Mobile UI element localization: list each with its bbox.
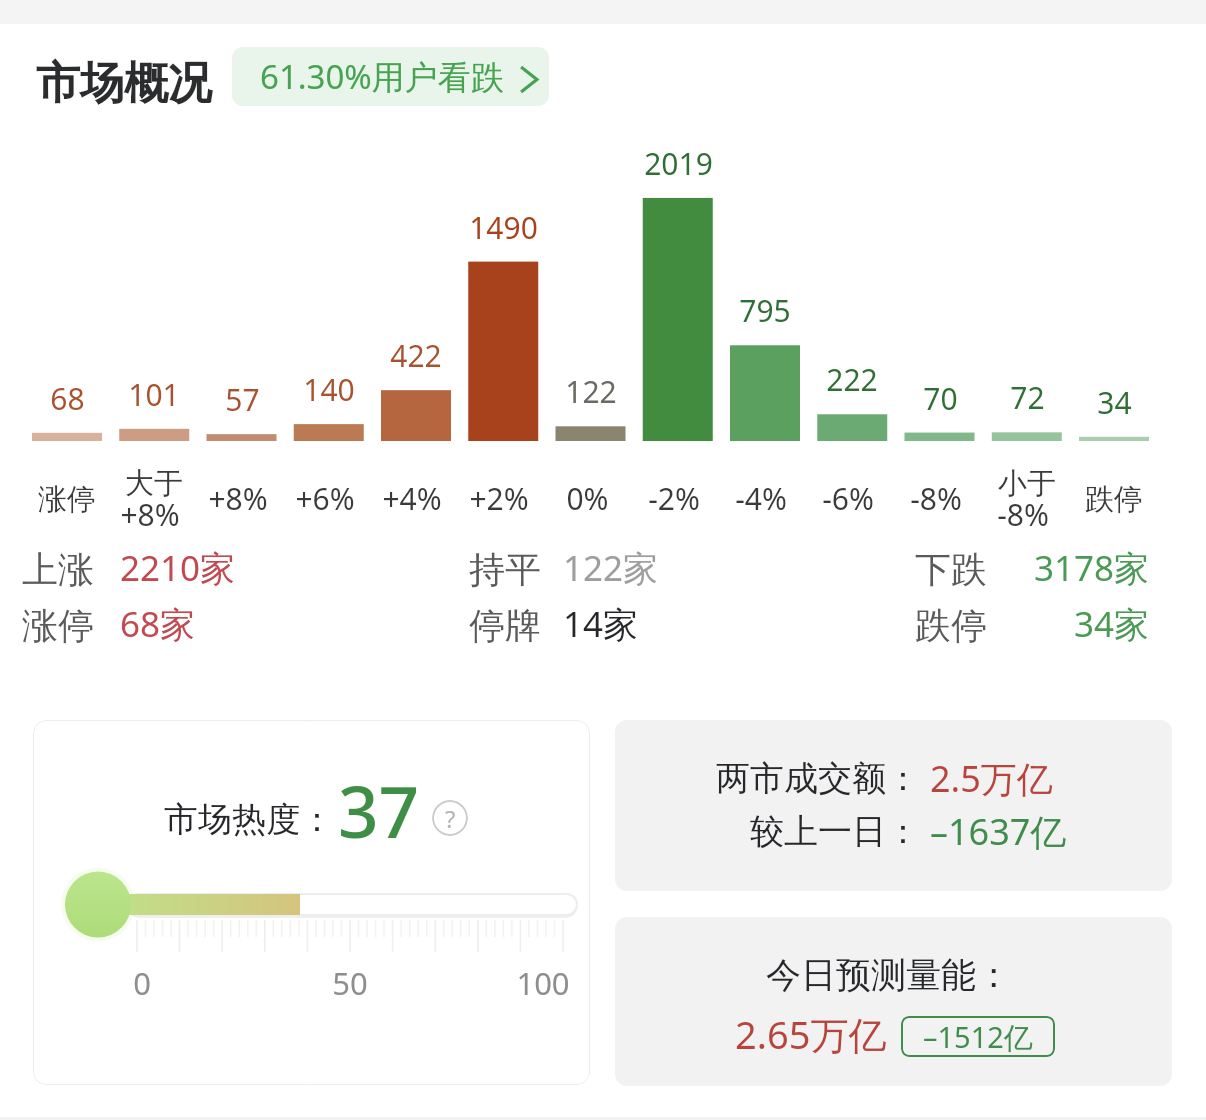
button[interactable]: 涨停 68	[32, 140, 102, 530]
staticText: 222	[826, 359, 878, 400]
staticText: -6%	[822, 478, 874, 519]
staticText: 0	[133, 962, 151, 1004]
staticText: 72	[1010, 377, 1045, 418]
staticText: 140	[303, 369, 355, 410]
staticText: 市场概况	[36, 56, 212, 111]
other: More	[520, 67, 538, 92]
button[interactable]: -4% 795	[730, 140, 800, 530]
staticText: 795	[739, 290, 791, 331]
staticText: 37	[338, 762, 420, 859]
button[interactable]: 61.30%用户看跌	[232, 47, 549, 106]
staticText: 14家	[563, 600, 639, 648]
staticText: 100	[516, 962, 570, 1004]
staticText: +4%	[382, 478, 442, 519]
staticText: +8%	[120, 494, 180, 535]
staticText: 涨停	[38, 481, 96, 518]
button[interactable]: 市场热度：	[33, 720, 590, 1085]
staticText: 57	[225, 379, 260, 420]
staticText: 422	[390, 335, 442, 376]
button[interactable]: 小于-8% 72	[992, 140, 1062, 530]
staticText: 122家	[563, 544, 659, 592]
button[interactable]: +4% 422	[381, 140, 451, 530]
button[interactable]: 0% 122	[556, 140, 626, 530]
staticText: –1637亿	[930, 807, 1067, 856]
button[interactable]: 两市成交额：	[615, 720, 1172, 891]
staticText: 两市成交额：	[716, 757, 920, 800]
button[interactable]: 大于+8% 101	[119, 140, 189, 530]
staticText: 小于	[998, 465, 1056, 502]
staticText: 上涨	[22, 547, 94, 592]
staticText: 较上一日：	[750, 810, 920, 853]
button[interactable]: +2% 1490	[468, 140, 538, 530]
staticText: -8%	[910, 478, 962, 519]
button[interactable]: 今日预测量能：	[615, 917, 1172, 1086]
staticText: 68家	[120, 600, 196, 648]
button[interactable]: -2% 2019	[643, 140, 713, 530]
staticText: -2%	[648, 478, 700, 519]
staticText: +8%	[208, 478, 268, 519]
staticText: 2019	[644, 143, 713, 184]
staticText: 1490	[469, 207, 538, 248]
staticText: 34	[1097, 382, 1132, 423]
staticText: 3178家	[1033, 544, 1149, 592]
staticText: 今日预测量能：	[766, 953, 1011, 997]
staticText: 61.30%用户看跌	[260, 54, 504, 99]
button[interactable]: Help	[432, 800, 468, 836]
button[interactable]: +8% 57	[207, 140, 277, 530]
staticText: -4%	[735, 478, 787, 519]
staticText: 2.65万亿	[735, 1008, 887, 1060]
staticText: 2.5万亿	[930, 754, 1053, 803]
staticText: 跌停	[1085, 481, 1143, 518]
staticText: +6%	[295, 478, 355, 519]
button[interactable]: +6% 140	[294, 140, 364, 530]
staticText: -8%	[997, 494, 1049, 535]
button[interactable]: -8% 70	[905, 140, 975, 530]
staticText: –1512亿	[923, 1017, 1033, 1057]
staticText: 大于	[125, 465, 183, 502]
staticText: 70	[923, 378, 958, 419]
staticText: 下跌	[915, 547, 987, 592]
staticText: 122	[565, 371, 617, 412]
staticText: 跌停	[915, 603, 987, 648]
staticText: +2%	[469, 478, 529, 519]
staticText: 涨停	[22, 603, 94, 648]
staticText: 2210家	[120, 544, 236, 592]
staticText: 34家	[1073, 600, 1149, 648]
staticText: 50	[332, 962, 368, 1004]
button[interactable]: -6% 222	[817, 140, 887, 530]
staticText: 市场热度：	[164, 798, 334, 841]
staticText: 停牌	[469, 603, 541, 648]
staticText: 68	[50, 378, 85, 419]
staticText: 0%	[566, 478, 609, 519]
staticText: ?	[445, 802, 456, 835]
button[interactable]: 跌停 34	[1079, 140, 1149, 530]
staticText: 101	[128, 374, 180, 415]
staticText: 持平	[469, 547, 541, 592]
